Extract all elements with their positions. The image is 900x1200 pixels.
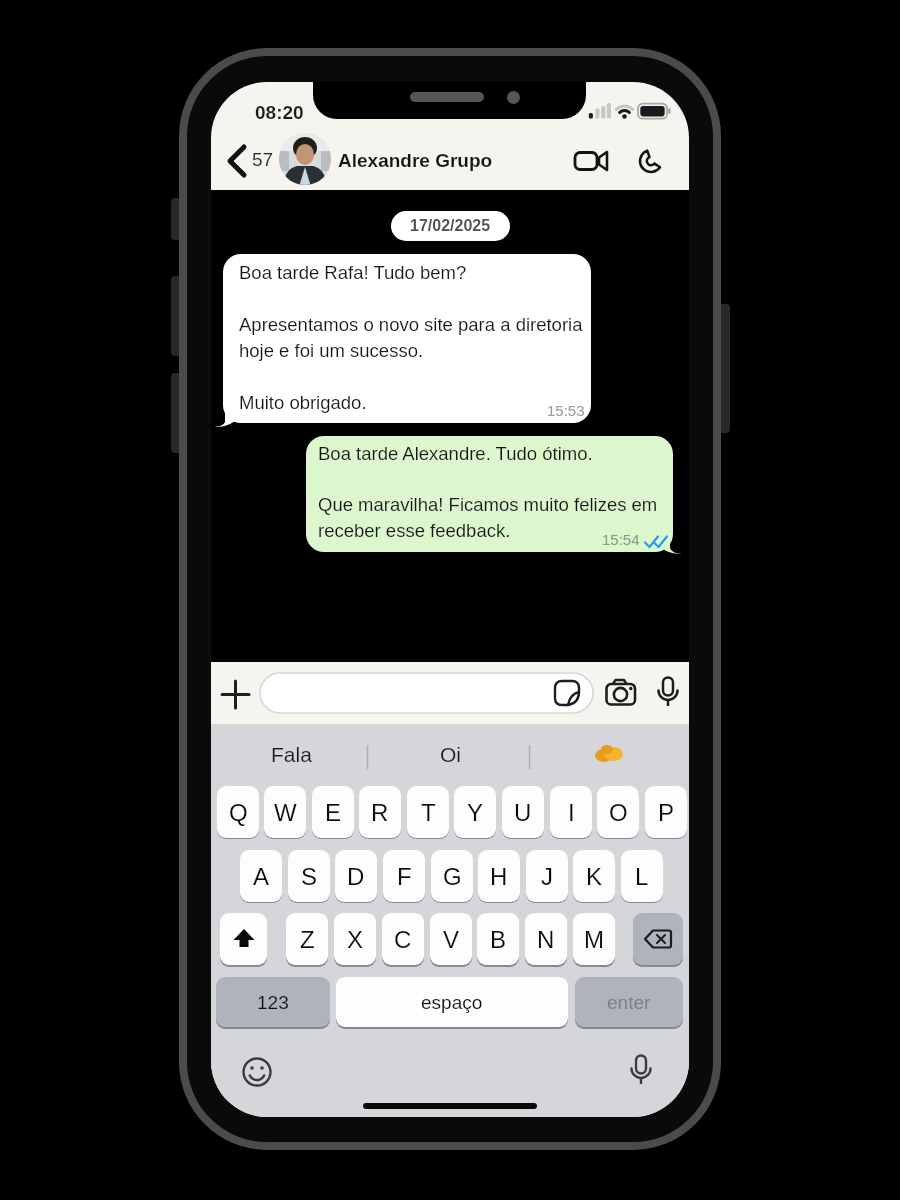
button[interactable]: I [550,786,592,838]
staticText: 57 [252,149,274,170]
staticText: 17/02/2025 [410,217,491,235]
button[interactable] [627,1054,655,1090]
staticText: R [371,799,389,826]
staticText: J [541,863,553,890]
button[interactable]: K [573,850,615,902]
button[interactable]: Boa tarde Rafa! Tudo bem? Apresentamos o… [223,254,591,423]
button[interactable]: Q [217,786,259,838]
staticText: V [443,926,460,953]
button[interactable]: enter [575,977,683,1027]
staticText: O [609,799,628,826]
staticText: Boa tarde Alexandre. Tudo ótimo. Que mar… [318,443,658,541]
button[interactable]: U [502,786,544,838]
button[interactable]: E [312,786,354,838]
button[interactable]: P [645,786,687,838]
staticText: E [325,799,342,826]
button[interactable]: Z [286,913,328,965]
staticText: P [658,799,675,826]
staticText: W [274,799,297,826]
staticText: 15:54 [602,531,640,548]
staticText: S [301,863,318,890]
staticText: L [635,863,649,890]
button[interactable] [631,142,675,180]
button[interactable]: Boa tarde Alexandre. Tudo ótimo. Que mar… [306,436,673,552]
button[interactable]: L [621,850,663,902]
button[interactable]: 57 [221,140,281,182]
button[interactable]: C [382,913,424,965]
staticText: B [490,926,507,953]
staticText: H [490,863,508,890]
staticText: 123 [257,992,289,1013]
button[interactable] [654,676,682,712]
button[interactable]: A [240,850,282,902]
staticText: Z [300,926,315,953]
staticText: G [443,863,462,890]
button[interactable]: O [597,786,639,838]
staticText: Y [467,799,484,826]
button[interactable]: R [359,786,401,838]
staticText: Oi [440,743,461,766]
button[interactable]: D [335,850,377,902]
staticText: U [514,799,532,826]
staticText: T [421,799,436,826]
button[interactable] [260,673,593,713]
button[interactable]: X [334,913,376,965]
button[interactable]: espaço [336,977,568,1027]
staticText: K [586,863,603,890]
button[interactable] [633,913,683,965]
button[interactable]: Y [454,786,496,838]
button[interactable]: 123 [216,977,330,1027]
button[interactable]: N [525,913,567,965]
button[interactable]: B [477,913,519,965]
button[interactable] [242,1057,272,1087]
button[interactable]: W [264,786,306,838]
button[interactable]: H [478,850,520,902]
button[interactable] [566,142,614,180]
staticText: Boa tarde Rafa! Tudo bem? Apresentamos o… [239,262,583,413]
button[interactable]: S [288,850,330,902]
staticText: espaço [421,992,483,1013]
staticText: enter [607,992,651,1013]
staticText: A [253,863,270,890]
staticText: Fala [271,743,312,766]
staticText: Alexandre Grupo [338,150,493,171]
button[interactable]: G [431,850,473,902]
button[interactable]: M [573,913,615,965]
button[interactable] [604,678,638,710]
staticText: F [397,863,412,890]
button[interactable]: Oi [390,734,510,774]
button[interactable] [549,734,669,774]
staticText: 15:53 [547,402,585,419]
staticText: D [347,863,365,890]
button[interactable] [279,133,331,185]
button[interactable]: Fala [231,734,351,774]
staticText: N [537,926,555,953]
button[interactable]: F [383,850,425,902]
button[interactable] [220,913,267,965]
staticText: M [584,926,604,953]
staticText: 08:20 [255,102,304,123]
button[interactable] [221,680,250,709]
staticText: Q [229,799,248,826]
staticText: C [394,926,412,953]
staticText: I [568,799,575,826]
staticText: X [347,926,364,953]
button[interactable]: V [430,913,472,965]
button[interactable]: J [526,850,568,902]
button[interactable]: T [407,786,449,838]
